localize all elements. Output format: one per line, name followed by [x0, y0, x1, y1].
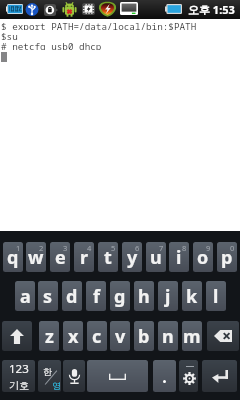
staticText: a [20, 284, 31, 309]
staticText: x [68, 324, 79, 349]
staticText: 6 [135, 243, 140, 253]
button[interactable]: 123 symbols [2, 360, 35, 392]
button[interactable]: j [158, 281, 178, 311]
button[interactable]: w [26, 242, 46, 272]
staticText: i [176, 245, 182, 270]
button[interactable]: l [206, 281, 226, 311]
button[interactable]: i [169, 242, 189, 272]
staticText: $su [1, 30, 18, 40]
staticText: 4 [87, 243, 92, 253]
staticText: v [115, 324, 126, 349]
button[interactable]: Voice input [63, 360, 85, 392]
staticText: 2 [39, 243, 44, 253]
staticText: s [43, 284, 53, 309]
staticText: 9 [206, 243, 211, 253]
button[interactable]: o [193, 242, 213, 272]
staticText: f [93, 284, 100, 309]
button[interactable]: c [87, 321, 107, 351]
button[interactable]: m [182, 321, 202, 351]
button[interactable]: Settings [179, 360, 198, 392]
staticText: 한 [43, 366, 52, 377]
staticText: 8 [182, 243, 187, 253]
staticText: m [183, 324, 201, 349]
button[interactable]: h [134, 281, 154, 311]
staticText: r [80, 245, 89, 270]
staticText: d [66, 284, 78, 309]
staticText: # netcfg usb0 dhcp [1, 40, 102, 50]
staticText: c [92, 324, 102, 349]
staticText: w [28, 245, 44, 270]
staticText: 오후 1:53 [188, 2, 235, 17]
staticText: 영 [52, 380, 61, 391]
staticText: l [213, 284, 219, 309]
button[interactable]: Space [87, 360, 148, 392]
staticText: 7 [159, 243, 164, 253]
button[interactable]: e [50, 242, 70, 272]
button[interactable]: k [182, 281, 202, 311]
button[interactable]: Korean English [38, 360, 61, 392]
button[interactable]: q [3, 242, 23, 272]
staticText: 1 [16, 243, 21, 253]
staticText: y [127, 245, 138, 270]
staticText: u [150, 245, 162, 270]
button[interactable]: p [217, 242, 237, 272]
button[interactable]: u [146, 242, 166, 272]
staticText: p [221, 245, 233, 270]
button[interactable]: a [15, 281, 35, 311]
button[interactable]: t [98, 242, 118, 272]
button[interactable]: x [63, 321, 83, 351]
button[interactable]: d [62, 281, 82, 311]
staticText: n [162, 324, 174, 349]
staticText: o [197, 245, 209, 270]
staticText: e [55, 245, 66, 270]
staticText: 5 [111, 243, 116, 253]
button[interactable]: Backspace [207, 321, 239, 351]
staticText: g [114, 284, 126, 309]
staticText: t [104, 245, 112, 270]
button[interactable]: period [153, 360, 176, 392]
staticText: 기호 [9, 379, 29, 392]
staticText: 0 [230, 243, 235, 253]
button[interactable]: z [39, 321, 59, 351]
staticText: h [138, 284, 150, 309]
staticText: 3 [63, 243, 68, 253]
staticText: q [7, 245, 19, 270]
staticText: b [138, 324, 150, 349]
button[interactable]: Shift [2, 321, 32, 351]
button[interactable]: r [74, 242, 94, 272]
staticText: k [186, 284, 198, 309]
button[interactable]: Enter [202, 360, 237, 392]
button[interactable]: b [134, 321, 154, 351]
button[interactable]: n [158, 321, 178, 351]
staticText: $ export PATH=/data/local/bin:$PATH [1, 20, 197, 30]
button[interactable]: s [38, 281, 58, 311]
button[interactable]: g [110, 281, 130, 311]
button[interactable]: y [122, 242, 142, 272]
staticText: j [165, 284, 171, 309]
staticText: z [45, 324, 54, 349]
button[interactable]: v [110, 321, 130, 351]
staticText: 123 [9, 361, 29, 377]
button[interactable]: f [86, 281, 106, 311]
